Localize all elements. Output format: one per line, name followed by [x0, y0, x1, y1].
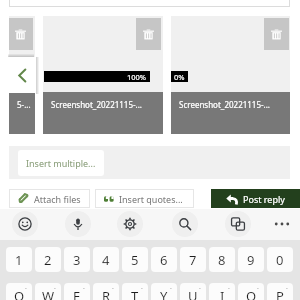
button[interactable]: Search	[172, 211, 198, 237]
button[interactable]: .	[122, 283, 148, 300]
button[interactable]: Screenshot_20221115-...	[171, 16, 290, 134]
button[interactable]: Post reply	[211, 189, 300, 208]
button[interactable]: 7	[180, 247, 206, 272]
staticText: .	[199, 283, 201, 292]
button[interactable]: Settings	[117, 211, 143, 237]
staticText: 9	[247, 251, 255, 269]
staticText: R	[102, 287, 111, 300]
staticText: .	[25, 283, 27, 292]
button[interactable]: Translate	[225, 211, 251, 237]
staticText: .	[54, 283, 56, 292]
button[interactable]: 3	[64, 247, 90, 272]
button[interactable]: .	[238, 283, 264, 300]
staticText: 0	[276, 251, 284, 269]
button[interactable]: Delete attachment	[136, 18, 161, 50]
staticText: .	[170, 283, 172, 292]
button[interactable]: .	[6, 283, 32, 300]
button[interactable]: .	[151, 283, 177, 300]
staticText: .	[286, 283, 288, 292]
button[interactable]: 8	[209, 247, 235, 272]
staticText: .	[112, 283, 114, 292]
staticText: I	[220, 287, 225, 300]
staticText: O	[246, 287, 257, 300]
staticText: .	[228, 283, 230, 292]
button[interactable]: Voice input	[65, 211, 91, 237]
button[interactable]: More options	[269, 211, 295, 237]
button[interactable]: Scroll left	[8, 57, 36, 93]
button[interactable]: 9	[238, 247, 264, 272]
staticText: E	[73, 287, 81, 300]
button[interactable]: .	[93, 283, 119, 300]
staticText: U	[188, 287, 198, 300]
button[interactable]: .	[209, 283, 235, 300]
button[interactable]: 4	[93, 247, 119, 272]
staticText: Q	[14, 287, 25, 300]
button[interactable]: Attach files	[10, 190, 89, 207]
staticText: Insert quotes...	[119, 193, 183, 205]
button[interactable]: Emoji	[12, 211, 38, 237]
staticText: 7	[189, 251, 197, 269]
staticText: .	[83, 283, 85, 292]
staticText: Y	[160, 287, 168, 300]
button[interactable]: .	[180, 283, 206, 300]
button[interactable]: Screenshot_20221115-...	[43, 16, 163, 134]
button[interactable]: Insert multiple...	[18, 150, 104, 176]
staticText: 6	[160, 251, 168, 269]
button[interactable]: 2	[35, 247, 61, 272]
staticText: Screenshot_20221115-...	[51, 99, 143, 110]
staticText: .	[257, 283, 259, 292]
button[interactable]: Delete attachment	[264, 18, 289, 50]
staticText: Screenshot_20221115-...	[179, 99, 271, 110]
button[interactable]: .	[64, 283, 90, 300]
staticText: 8	[218, 251, 226, 269]
button[interactable]: 1	[6, 247, 32, 272]
staticText: .	[141, 283, 143, 292]
staticText: 0%	[174, 72, 185, 82]
staticText: W	[42, 287, 55, 300]
button[interactable]: .	[267, 283, 293, 300]
button[interactable]: Delete attachment	[9, 18, 33, 50]
staticText: 4	[102, 251, 110, 269]
staticText: 100%	[127, 72, 147, 82]
staticText: 5-...	[17, 99, 31, 110]
staticText: Post reply	[243, 193, 285, 205]
staticText: P	[276, 287, 284, 300]
button[interactable]: 0	[267, 247, 293, 272]
staticText: T	[131, 287, 139, 300]
button[interactable]: 5-...	[9, 16, 35, 134]
staticText: 2	[44, 251, 52, 269]
staticText: 1	[15, 251, 23, 269]
staticText: 5	[131, 251, 139, 269]
staticText: Attach files	[34, 193, 81, 205]
staticText: 3	[73, 251, 81, 269]
button[interactable]: .	[35, 283, 61, 300]
staticText: Insert multiple...	[26, 157, 96, 169]
button[interactable]: 6	[151, 247, 177, 272]
button[interactable]: 5	[122, 247, 148, 272]
button[interactable]: Insert quotes...	[96, 190, 193, 207]
